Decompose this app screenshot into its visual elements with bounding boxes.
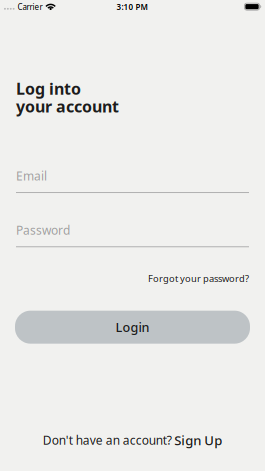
button[interactable]: Login	[16, 311, 249, 344]
staticText: Email	[16, 168, 47, 184]
button[interactable]: Sign Up	[174, 431, 222, 449]
staticText: Password	[16, 222, 70, 238]
staticText: Log into your account	[16, 78, 119, 117]
staticText: Login	[115, 318, 149, 336]
staticText: Carrier	[18, 2, 43, 12]
staticText: Sign Up	[174, 431, 222, 449]
staticText: 3:10 PM	[116, 1, 147, 12]
staticText: Forgot your password?	[148, 272, 249, 285]
button[interactable]: Email	[16, 168, 249, 193]
button[interactable]: Forgot your password?	[148, 272, 249, 285]
button[interactable]: Password	[16, 222, 249, 247]
staticText: Don't have an account?	[43, 432, 172, 448]
